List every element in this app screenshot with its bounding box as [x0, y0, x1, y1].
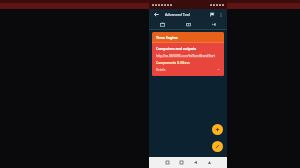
button[interactable]: More options	[217, 11, 224, 18]
staticText: Components & filters	[156, 61, 190, 65]
button[interactable]: Undo	[201, 20, 227, 29]
button[interactable]: Expand	[216, 67, 221, 72]
button[interactable]: Save	[149, 20, 175, 29]
button[interactable]: Hide keyboard	[202, 157, 216, 168]
staticText: Details	[156, 68, 166, 72]
staticText: Computers and outputs	[156, 46, 197, 51]
button[interactable]: Edit	[212, 141, 223, 152]
staticText: Advanced Tool	[165, 12, 208, 17]
button[interactable]: Navigate up	[152, 10, 161, 19]
staticText: Time Engine	[156, 35, 178, 40]
button[interactable]: http://ex.PANORE.com/in/RandBrandStart	[156, 54, 215, 58]
button[interactable]: Share	[175, 20, 201, 29]
button[interactable]: Search	[208, 10, 217, 19]
button[interactable]: Add	[212, 124, 223, 135]
button[interactable]: Time Engine	[152, 32, 224, 42]
button[interactable]: Home	[174, 157, 188, 168]
button[interactable]: Back	[188, 157, 202, 168]
button[interactable]: Recents	[160, 157, 174, 168]
